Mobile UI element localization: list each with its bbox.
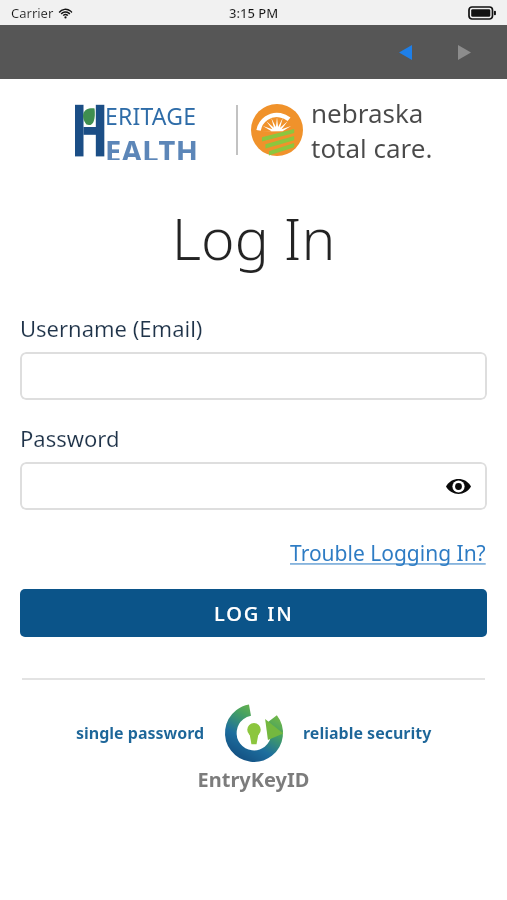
staticText: EntryKeyID [0,766,507,793]
staticText: total care. [311,130,433,165]
button[interactable]: Back [382,29,428,75]
staticText: reliable security [303,722,432,744]
staticText: single password [76,722,205,744]
button[interactable] [20,352,487,400]
staticText: Username (Email) [20,313,203,343]
button[interactable]: Show password [20,462,487,510]
staticText: nebraska [311,95,424,130]
staticText: 3:15 PM [229,4,279,22]
staticText: LOG IN [214,600,294,627]
button[interactable]: Forward [441,29,487,75]
button[interactable]: Trouble Logging In? [288,537,488,570]
staticText: Password [20,423,120,453]
staticText: Trouble Logging In? [290,539,486,568]
staticText: Carrier [11,4,54,22]
staticText: Log In [0,199,507,277]
button[interactable]: LOG IN [20,589,487,637]
staticText: ERITAGE [105,100,197,131]
staticText: EALTH [105,131,199,160]
button[interactable]: Show password [441,469,475,503]
